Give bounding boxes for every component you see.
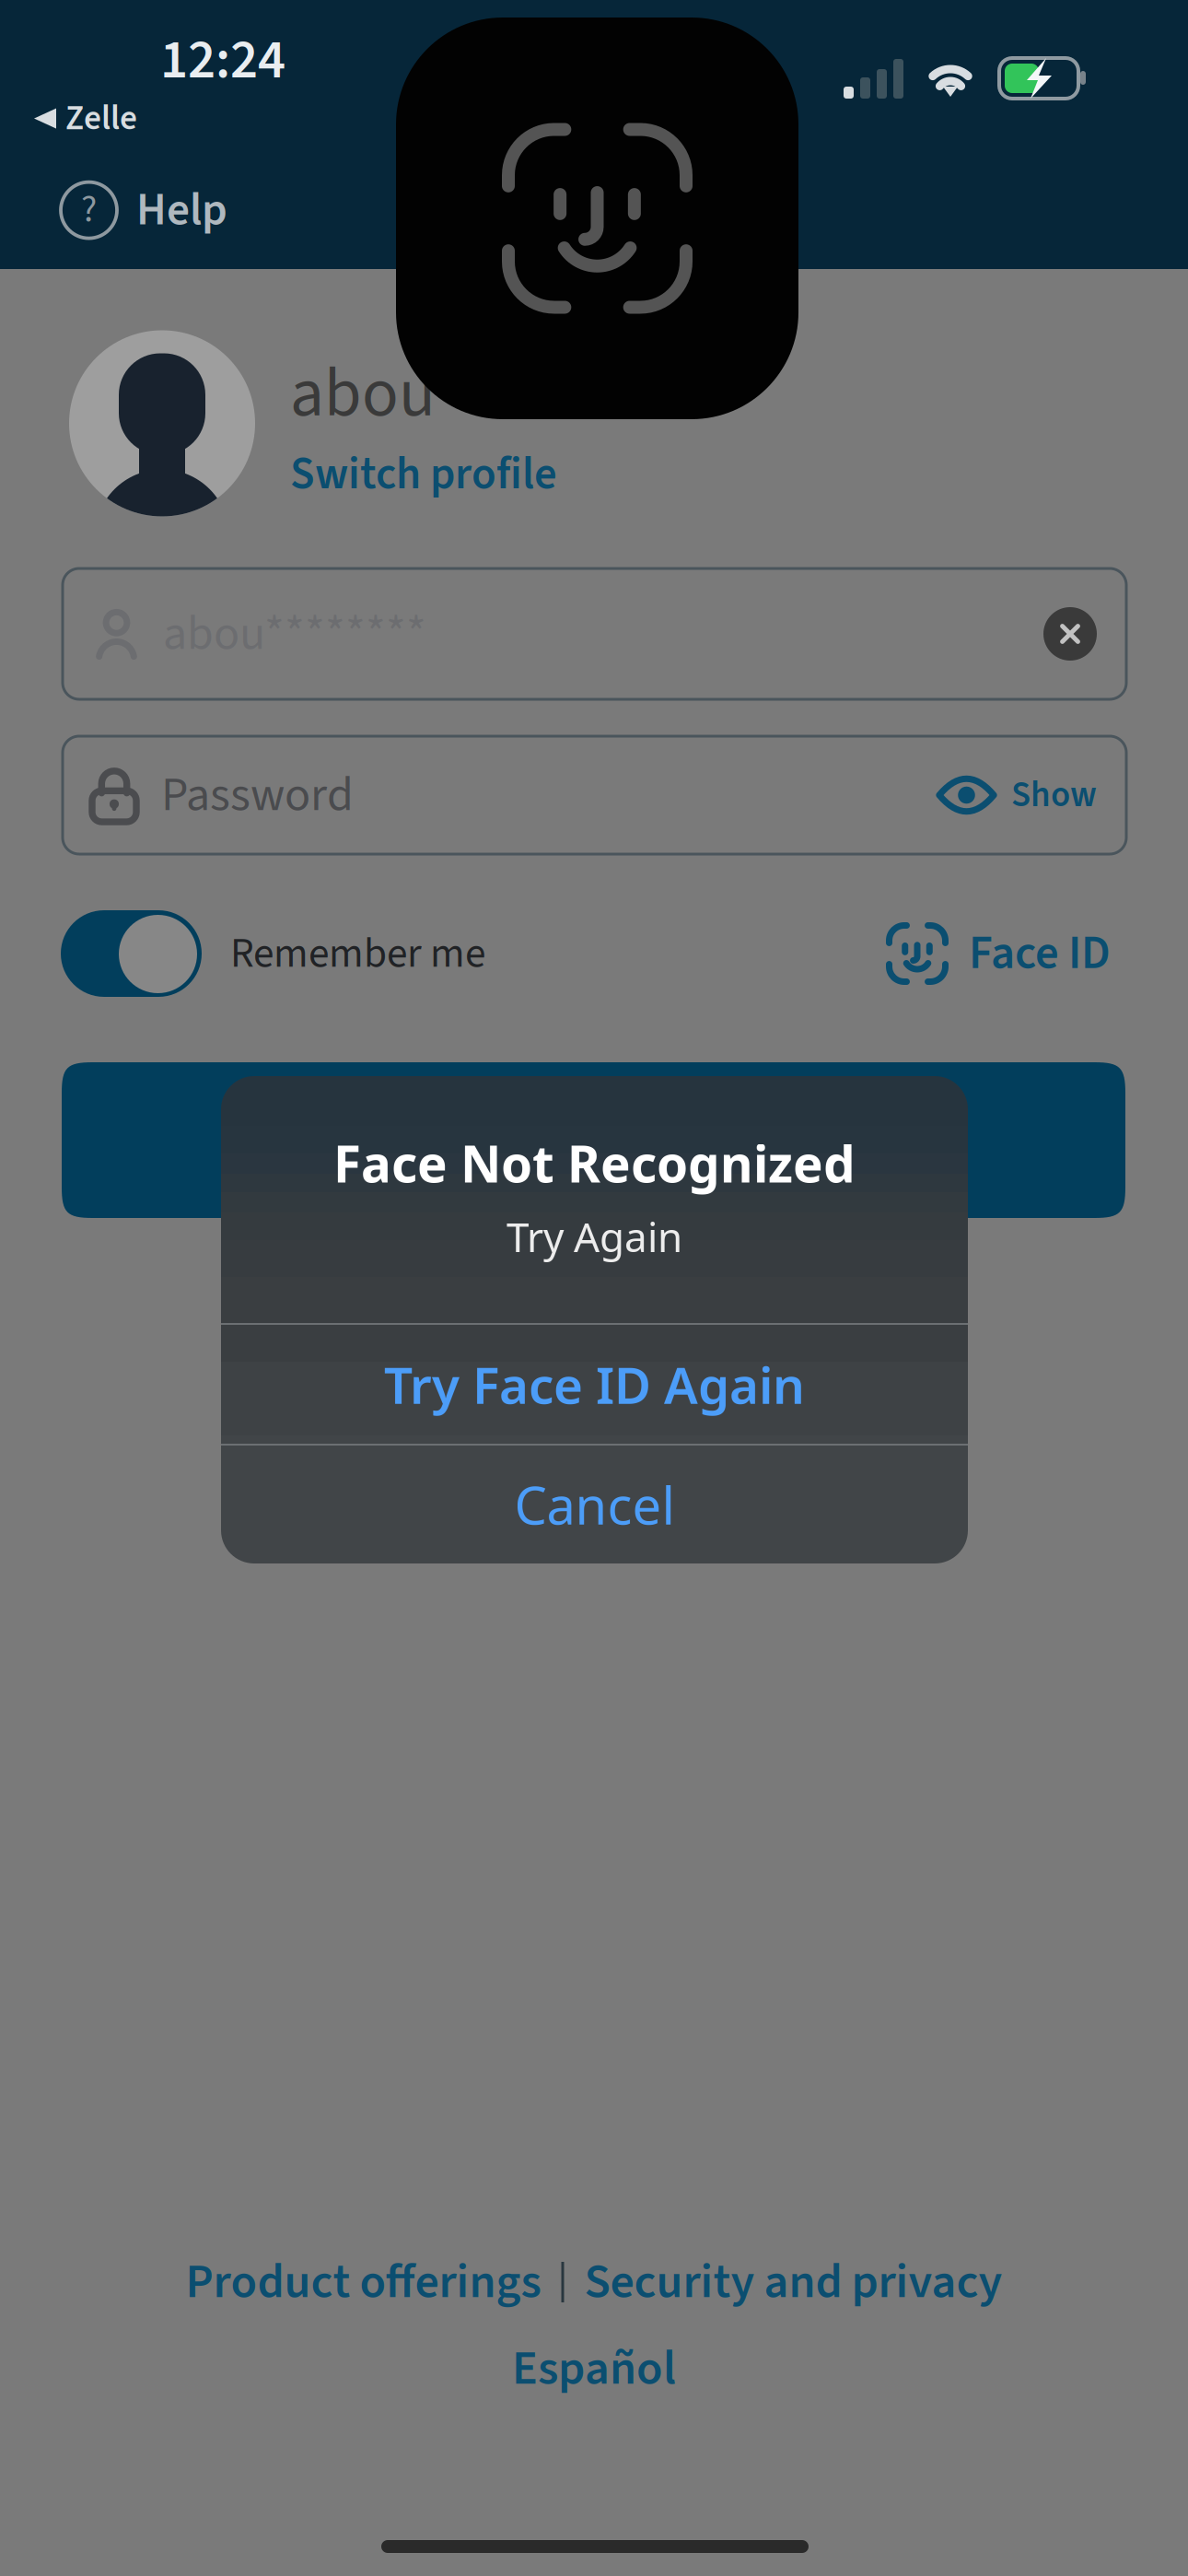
button[interactable]: Clear username xyxy=(1043,607,1097,661)
button[interactable]: Switch profile xyxy=(290,442,557,506)
staticText: Security and privacy xyxy=(584,2248,1002,2316)
staticText: Try Face ID Again xyxy=(384,1351,805,1418)
staticText: Password xyxy=(161,761,354,829)
staticText: Face ID xyxy=(969,920,1111,987)
button[interactable]: Security and privacy xyxy=(584,2239,1002,2325)
staticText: abou xyxy=(290,346,436,442)
staticText: abou******** xyxy=(163,600,426,668)
button[interactable]: Profile photo xyxy=(69,330,255,516)
staticText: 12:24 xyxy=(160,22,285,99)
button[interactable]: Español xyxy=(512,2325,676,2412)
button[interactable]: Remember me xyxy=(61,910,485,997)
staticText: Remember me xyxy=(230,924,485,983)
button[interactable]: ? xyxy=(48,167,240,254)
staticText: Sign in xyxy=(526,1107,661,1173)
staticText: Cancel xyxy=(514,1470,675,1539)
staticText: Zelle xyxy=(65,94,137,143)
button[interactable]: Show xyxy=(936,770,1097,821)
staticText: Español xyxy=(512,2335,676,2403)
staticText: Show xyxy=(1011,770,1097,821)
staticText: Product offerings xyxy=(186,2248,541,2316)
staticText: Help xyxy=(136,178,227,242)
staticText: Face Not Recognized xyxy=(333,1130,856,1196)
button[interactable]: Cancel xyxy=(221,1446,968,1563)
staticText: Try Again xyxy=(507,1209,682,1263)
button[interactable]: Try Face ID Again xyxy=(221,1325,968,1444)
staticText: Switch profile xyxy=(290,442,557,506)
staticText: ? xyxy=(81,183,97,237)
button[interactable]: Product offerings xyxy=(186,2239,541,2325)
button[interactable]: Face ID xyxy=(886,920,1111,987)
button[interactable]: Sign in xyxy=(62,1062,1125,1218)
